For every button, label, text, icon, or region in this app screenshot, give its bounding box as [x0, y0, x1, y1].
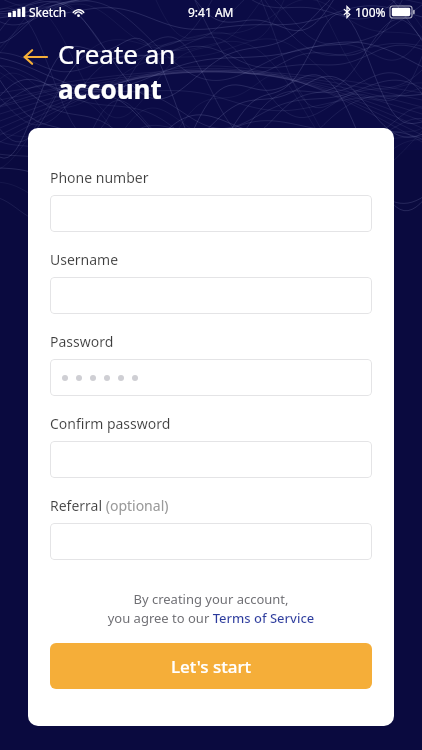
- button[interactable]: [50, 441, 372, 478]
- staticText: Referral (optional): [50, 496, 169, 515]
- button[interactable]: [50, 195, 372, 232]
- staticText: By creating your account, you agree to o…: [50, 590, 372, 627]
- staticText: Let's start: [171, 655, 252, 678]
- staticText: 100%: [355, 4, 386, 20]
- button[interactable]: Back: [20, 42, 50, 72]
- staticText: Create an: [58, 36, 176, 71]
- staticText: Username: [50, 250, 119, 269]
- staticText: Sketch: [29, 4, 67, 20]
- button[interactable]: [50, 359, 372, 396]
- staticText: Password: [50, 332, 114, 351]
- staticText: Confirm password: [50, 414, 171, 433]
- button[interactable]: [50, 277, 372, 314]
- button[interactable]: Let's start: [50, 643, 372, 689]
- staticText: account: [58, 71, 162, 106]
- staticText: Phone number: [50, 168, 149, 187]
- button[interactable]: [50, 523, 372, 560]
- staticText: 9:41 AM: [188, 4, 234, 20]
